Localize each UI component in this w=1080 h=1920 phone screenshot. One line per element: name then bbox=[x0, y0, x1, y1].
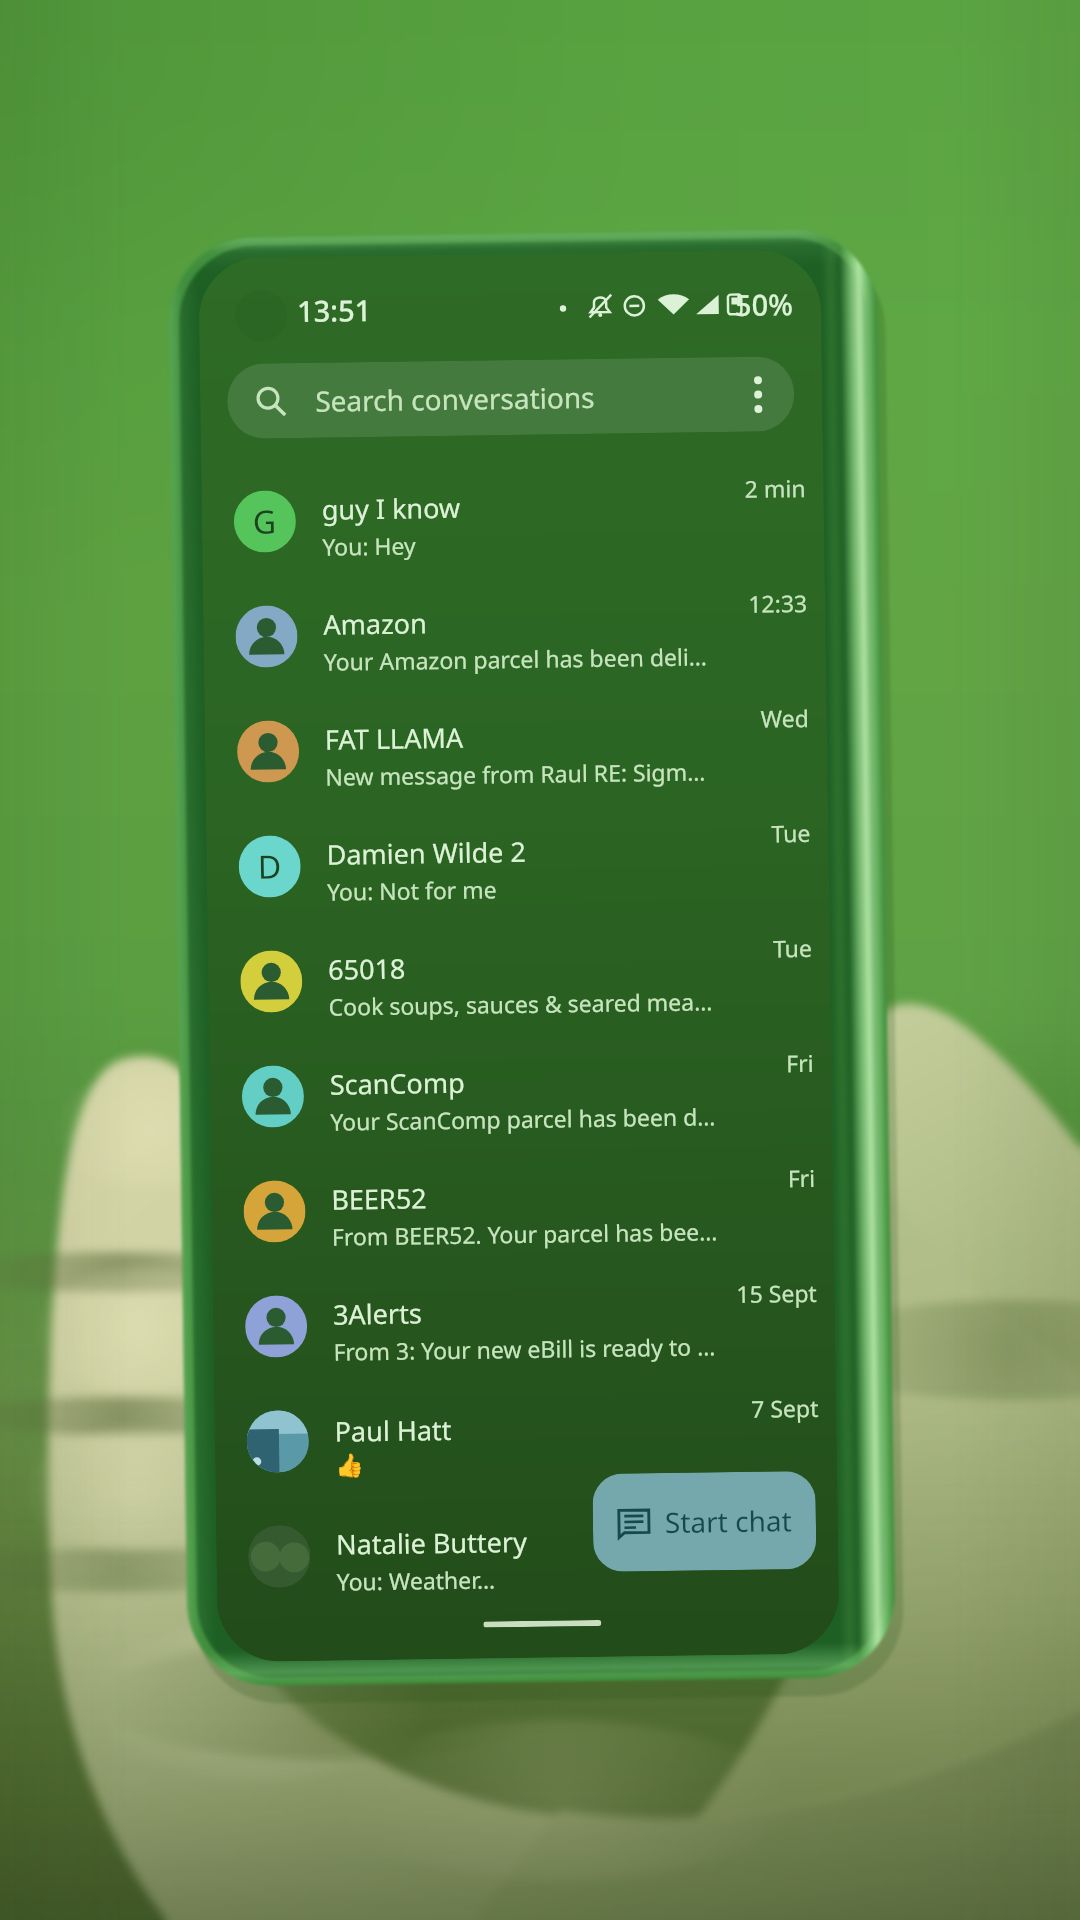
button[interactable]: ScanComp bbox=[209, 1031, 833, 1154]
button[interactable]: Natalie Buttery bbox=[216, 1491, 839, 1614]
staticText: Damien Wilde 2 bbox=[326, 833, 527, 873]
staticText: You: Hey bbox=[322, 529, 416, 562]
staticText: From 3: Your new eBill is ready to vie… bbox=[333, 1330, 722, 1367]
staticText: 12:33 bbox=[748, 587, 807, 619]
staticText: Paul Hatt bbox=[334, 1411, 452, 1450]
staticText: Natalie Buttery bbox=[336, 1523, 527, 1563]
staticText: Fri bbox=[787, 1162, 815, 1193]
staticText: BEER52 bbox=[331, 1179, 428, 1218]
button[interactable]: D bbox=[206, 801, 829, 924]
button[interactable]: 3Alerts bbox=[212, 1261, 836, 1384]
staticText: Fri bbox=[785, 1047, 814, 1078]
staticText: G bbox=[253, 499, 277, 544]
button[interactable]: Amazon bbox=[203, 571, 826, 694]
staticText: 👍 bbox=[335, 1452, 364, 1480]
button[interactable]: Search conversations bbox=[227, 356, 795, 439]
staticText: guy I know bbox=[321, 489, 461, 528]
staticText: 2 min bbox=[744, 472, 806, 504]
staticText: 50% bbox=[735, 284, 793, 324]
staticText: Search conversations bbox=[315, 378, 595, 420]
staticText: You: Weather… bbox=[336, 1563, 496, 1597]
button[interactable]: G bbox=[201, 456, 825, 579]
staticText: You: Not for me bbox=[327, 873, 497, 907]
staticText: 13:51 bbox=[297, 290, 372, 330]
button[interactable]: Paul Hatt bbox=[214, 1376, 837, 1499]
staticText: 15 Sept bbox=[735, 1277, 817, 1309]
staticText: Tue bbox=[773, 932, 812, 963]
staticText: FAT LLAMA bbox=[325, 719, 464, 758]
other: More options bbox=[754, 377, 762, 413]
button[interactable]: BEER52 bbox=[211, 1146, 834, 1269]
staticText: Start chat bbox=[665, 1501, 792, 1541]
staticText: Your Amazon parcel has been delivere… bbox=[324, 640, 712, 677]
staticText: D bbox=[257, 844, 282, 889]
staticText: Wed bbox=[759, 702, 809, 734]
button[interactable]: Start chat bbox=[592, 1471, 816, 1572]
button[interactable]: FAT LLAMA bbox=[204, 686, 828, 809]
staticText: 3Alerts bbox=[333, 1294, 422, 1333]
staticText: 7 Sept bbox=[750, 1392, 818, 1424]
button[interactable]: 65018 bbox=[207, 916, 831, 1039]
staticText: New message from Raul RE: Sigma 18-… bbox=[325, 755, 714, 792]
staticText: Amazon bbox=[323, 604, 428, 643]
staticText: Tue bbox=[771, 817, 810, 848]
staticText: From BEER52. Your parcel has been deli… bbox=[332, 1215, 720, 1252]
staticText: 65018 bbox=[328, 950, 406, 988]
staticText: Your ScanComp parcel has been deliver… bbox=[330, 1100, 718, 1137]
staticText: ScanComp bbox=[329, 1064, 465, 1103]
staticText: Cook soups, sauces & seared meat wit… bbox=[328, 985, 717, 1022]
